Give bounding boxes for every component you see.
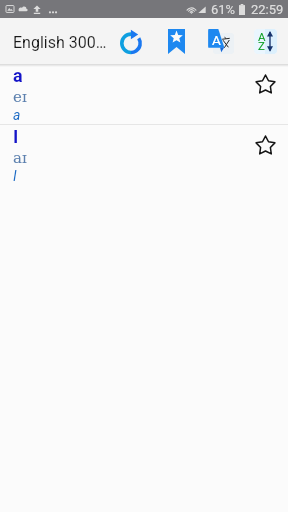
staticText: Z: [258, 39, 265, 52]
staticText: aɪ: [13, 149, 27, 166]
staticText: A: [212, 32, 221, 48]
button[interactable]: Add to favourites: [251, 130, 280, 159]
staticText: 61%: [211, 2, 236, 17]
staticText: eɪ: [13, 88, 27, 105]
button[interactable]: Translate: [206, 26, 234, 54]
button[interactable]: a: [0, 64, 288, 124]
staticText: a: [13, 65, 23, 86]
staticText: A: [258, 30, 266, 43]
button[interactable]: I: [0, 125, 288, 185]
staticText: I: [13, 168, 17, 184]
button[interactable]: Bookmarks: [165, 27, 187, 55]
staticText: 22:59: [251, 2, 284, 17]
button[interactable]: Sort: [250, 26, 278, 54]
button[interactable]: Add to favourites: [251, 69, 280, 98]
staticText: I: [13, 126, 19, 147]
staticText: English 300…: [13, 33, 107, 52]
button[interactable]: Refresh: [118, 29, 144, 55]
staticText: a: [13, 107, 21, 123]
